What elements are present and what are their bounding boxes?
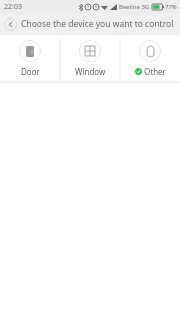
staticText: Window [75,66,106,77]
button[interactable]: Window [60,34,120,83]
staticText: Door [21,66,40,77]
staticText: 22:03 [4,2,22,12]
staticText: Beeline 3G [119,3,150,11]
staticText: 77% [165,3,177,11]
button[interactable]: Back [0,14,20,34]
staticText: Choose the device you want to control [21,18,174,30]
staticText: Other [144,66,166,77]
button[interactable]: Door [0,34,60,83]
button[interactable]: Other [120,34,180,83]
